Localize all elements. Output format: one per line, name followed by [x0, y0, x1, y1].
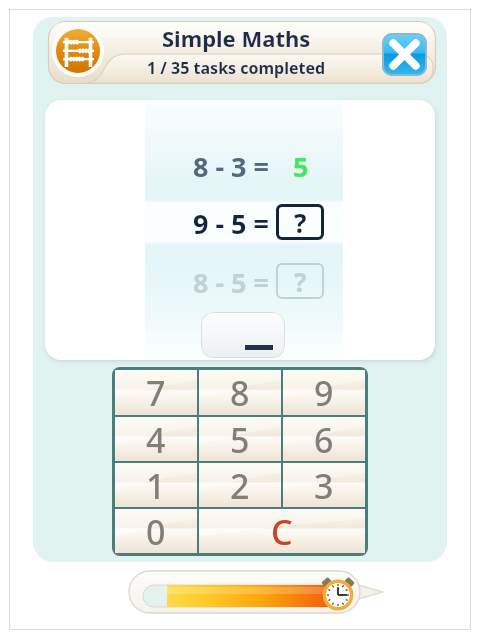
button[interactable]: 0	[115, 509, 197, 553]
staticText: C	[271, 509, 293, 553]
staticText: 4	[146, 417, 166, 461]
staticText: Simple Maths	[162, 23, 311, 52]
button[interactable]: 6	[283, 417, 365, 461]
button[interactable]: 2	[199, 463, 281, 507]
staticText: 1	[146, 463, 166, 507]
button[interactable]: 4	[115, 417, 197, 461]
staticText: 7	[146, 370, 166, 415]
button[interactable]: 9	[283, 370, 365, 415]
staticText: 0	[146, 509, 166, 553]
staticText: 5	[293, 148, 309, 185]
button[interactable]: C	[199, 509, 365, 553]
staticText: ?	[294, 264, 307, 299]
button[interactable]: Close	[382, 33, 427, 76]
staticText: ?	[294, 205, 307, 240]
staticText: 8 - 3 =	[193, 148, 270, 185]
button[interactable]: 8	[199, 370, 281, 415]
staticText: 8	[230, 370, 250, 415]
button[interactable]: 5	[199, 417, 281, 461]
button[interactable]: 3	[283, 463, 365, 507]
staticText: 3	[314, 463, 334, 507]
staticText: 1 / 35 tasks completed	[147, 57, 326, 79]
staticText: 6	[314, 417, 334, 461]
staticText: 2	[230, 463, 250, 507]
staticText: 9	[314, 370, 334, 415]
button[interactable]: 7	[115, 370, 197, 415]
staticText: 9 - 5 =	[193, 205, 270, 242]
staticText: 5	[230, 417, 250, 461]
button[interactable]: Menu	[56, 29, 100, 73]
button[interactable]: 1	[115, 463, 197, 507]
button[interactable]: Answer input	[201, 312, 285, 358]
staticText: 8 - 5 =	[193, 264, 270, 301]
